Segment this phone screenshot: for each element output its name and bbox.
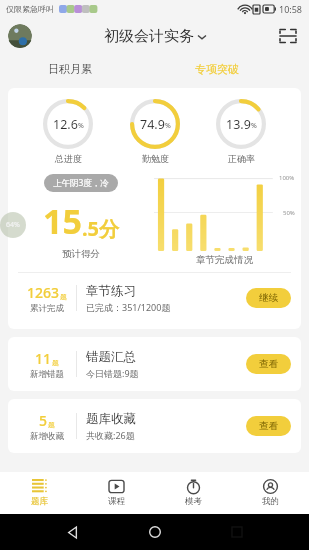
staticText: 专项突破 — [195, 62, 239, 76]
button[interactable]: Progress 64 percent — [0, 212, 26, 238]
staticText: 上午阴3度，冷 — [53, 177, 109, 189]
staticText: 课程 — [108, 496, 125, 507]
button[interactable]: 初级会计实务 — [104, 27, 206, 46]
staticText: 新增收藏 — [30, 431, 64, 442]
staticText: 日积月累 — [48, 62, 92, 76]
button[interactable]: 查看 — [246, 354, 291, 374]
staticText: 总进度 — [55, 153, 82, 164]
staticText: 仅限紧急呼叫 — [6, 4, 54, 14]
staticText: 题 — [60, 292, 67, 301]
staticText: 题库收藏 — [86, 411, 136, 427]
button[interactable]: 课程 — [78, 472, 155, 514]
button[interactable]: 日积月累 — [44, 58, 96, 80]
staticText: 13.9 — [226, 116, 251, 133]
staticText: 累计完成 — [30, 303, 64, 314]
staticText: 50% — [283, 209, 295, 217]
staticText: 已完成：351/1200题 — [86, 301, 171, 313]
staticText: 章节完成情况 — [196, 254, 253, 266]
staticText: % — [165, 121, 171, 131]
staticText: 共收藏:26题 — [86, 429, 135, 441]
staticText: 64% — [6, 220, 20, 230]
staticText: 题库 — [31, 496, 48, 507]
button[interactable]: 专项突破 — [191, 58, 243, 80]
staticText: 74.9 — [140, 116, 165, 133]
button[interactable]: 11 — [8, 337, 301, 391]
staticText: 初级会计实务 — [104, 27, 194, 46]
staticText: 勤勉度 — [142, 153, 169, 164]
staticText: 模考 — [185, 496, 202, 507]
staticText: 100% — [279, 174, 295, 182]
button[interactable]: 5 — [8, 399, 301, 453]
button[interactable]: Home — [145, 522, 165, 542]
staticText: 题 — [52, 358, 59, 367]
staticText: % — [78, 121, 84, 131]
staticText: 1263 — [27, 283, 60, 302]
button[interactable]: 继续 — [246, 288, 291, 308]
staticText: 查看 — [259, 358, 278, 370]
button[interactable]: Back — [62, 522, 82, 542]
staticText: 新增错题 — [30, 369, 64, 380]
staticText: % — [251, 121, 257, 131]
button[interactable]: Scan — [277, 25, 299, 47]
staticText: 5 — [39, 411, 48, 430]
staticText: 11 — [35, 349, 52, 368]
staticText: 章节练习 — [86, 283, 136, 299]
staticText: 15 — [43, 198, 82, 244]
button[interactable]: Recents — [227, 522, 247, 542]
button[interactable]: 12.6 — [8, 88, 301, 329]
staticText: 正确率 — [228, 153, 255, 164]
button[interactable]: 我的 — [232, 472, 309, 514]
button[interactable]: 模考 — [155, 472, 232, 514]
staticText: 题 — [48, 420, 55, 429]
staticText: .5分 — [82, 215, 120, 242]
staticText: 查看 — [259, 420, 278, 432]
button[interactable]: 查看 — [246, 416, 291, 436]
staticText: 预计得分 — [62, 248, 100, 260]
staticText: 继续 — [259, 292, 278, 304]
staticText: 我的 — [262, 496, 279, 507]
staticText: 错题汇总 — [86, 349, 136, 365]
staticText: 10:58 — [279, 3, 303, 15]
staticText: 12.6 — [53, 116, 78, 133]
staticText: 今日错题:9题 — [86, 367, 139, 379]
button[interactable]: 1263 — [8, 275, 301, 321]
button[interactable]: Profile — [8, 24, 32, 48]
button[interactable]: 题库 — [0, 472, 78, 514]
